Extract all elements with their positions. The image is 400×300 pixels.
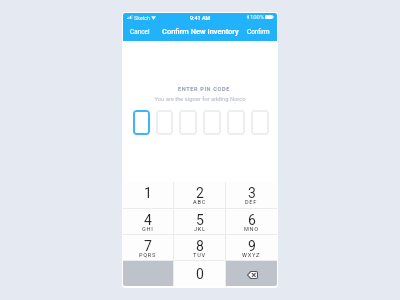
staticText: 4 bbox=[144, 212, 152, 228]
button[interactable]: 1 bbox=[123, 182, 173, 208]
staticText: ABC bbox=[193, 199, 207, 206]
button[interactable]: 9 bbox=[226, 235, 277, 260]
staticText: 3 bbox=[248, 185, 256, 201]
button[interactable]: 7 bbox=[123, 235, 173, 260]
staticText: Sketch bbox=[134, 15, 151, 21]
button[interactable]: Confirm bbox=[243, 24, 277, 40]
button[interactable] bbox=[227, 110, 245, 135]
staticText: JKL bbox=[194, 226, 206, 233]
button[interactable] bbox=[251, 110, 269, 135]
staticText: Confirm bbox=[247, 28, 270, 36]
button[interactable]: 2 bbox=[174, 182, 225, 208]
button[interactable]: 3 bbox=[226, 182, 277, 208]
button[interactable] bbox=[156, 110, 173, 135]
staticText: 0 bbox=[196, 266, 204, 282]
button[interactable] bbox=[133, 110, 150, 135]
staticText: GHI bbox=[142, 226, 154, 233]
staticText: 8 bbox=[196, 238, 204, 254]
staticText: You are the signer for adding Norco bbox=[123, 96, 277, 103]
button[interactable] bbox=[203, 110, 221, 135]
staticText: 9 bbox=[248, 238, 256, 254]
staticText: DEF bbox=[245, 199, 258, 206]
staticText: 6 bbox=[248, 212, 256, 228]
button[interactable]: 8 bbox=[174, 235, 225, 260]
staticText: Cancel bbox=[130, 28, 150, 36]
button[interactable] bbox=[179, 110, 197, 135]
staticText: ENTER PIN CODE bbox=[127, 86, 277, 93]
staticText: 7 bbox=[144, 238, 152, 254]
button[interactable]: 4 bbox=[123, 209, 173, 234]
staticText: TUV bbox=[193, 252, 206, 259]
staticText: 100% bbox=[250, 14, 265, 21]
staticText: 2 bbox=[196, 185, 204, 201]
staticText: 5 bbox=[196, 212, 204, 228]
staticText: 1 bbox=[144, 185, 152, 201]
button[interactable]: 6 bbox=[226, 209, 277, 234]
staticText: PQRS bbox=[139, 252, 157, 259]
button[interactable]: 5 bbox=[174, 209, 225, 234]
button[interactable]: Delete bbox=[226, 261, 277, 286]
staticText: MNO bbox=[244, 226, 259, 233]
staticText: WXYZ bbox=[242, 252, 261, 259]
staticText: Confirm New Inventory bbox=[162, 27, 239, 36]
button[interactable]: 0 bbox=[174, 261, 225, 286]
button[interactable]: Cancel bbox=[123, 24, 154, 40]
staticText: 9:41 AM bbox=[190, 15, 211, 21]
